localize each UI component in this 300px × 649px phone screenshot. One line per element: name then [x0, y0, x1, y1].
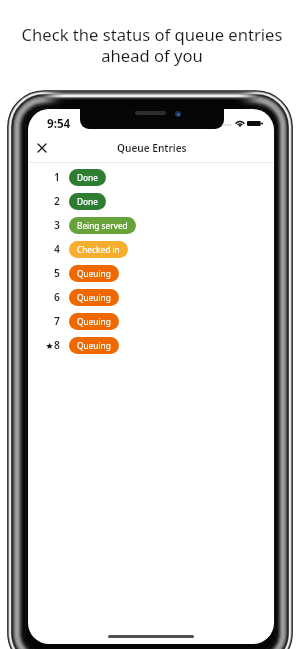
button[interactable]: 6	[28, 285, 274, 309]
button[interactable]: 5	[28, 261, 274, 285]
staticText: 6	[54, 290, 60, 304]
staticText: 2	[54, 194, 60, 208]
staticText: 8	[54, 338, 60, 352]
staticText: 4	[54, 242, 60, 256]
button[interactable]: 2	[28, 189, 274, 213]
staticText: Being served	[77, 220, 128, 231]
staticText: Done	[77, 196, 98, 207]
staticText: 9:54	[47, 116, 71, 132]
staticText: Queuing	[77, 268, 111, 279]
button[interactable]: 8	[28, 333, 274, 357]
staticText: 1	[54, 170, 60, 184]
staticText: 7	[54, 314, 60, 328]
button[interactable]: 7	[28, 309, 274, 333]
button[interactable]: 4	[28, 237, 274, 261]
button[interactable]: 3	[28, 213, 274, 237]
button[interactable]: Close	[33, 139, 51, 157]
staticText: Check the status of queue entries ahead …	[12, 23, 292, 67]
staticText: Checked in	[77, 244, 120, 255]
staticText: 5	[54, 266, 60, 280]
staticText: Queuing	[77, 292, 111, 303]
staticText: Queue Entries	[117, 141, 187, 155]
staticText: Queuing	[77, 316, 111, 327]
staticText: 3	[54, 218, 60, 232]
staticText: Done	[77, 172, 98, 183]
staticText: Queuing	[77, 340, 111, 351]
button[interactable]: 1	[28, 165, 274, 189]
